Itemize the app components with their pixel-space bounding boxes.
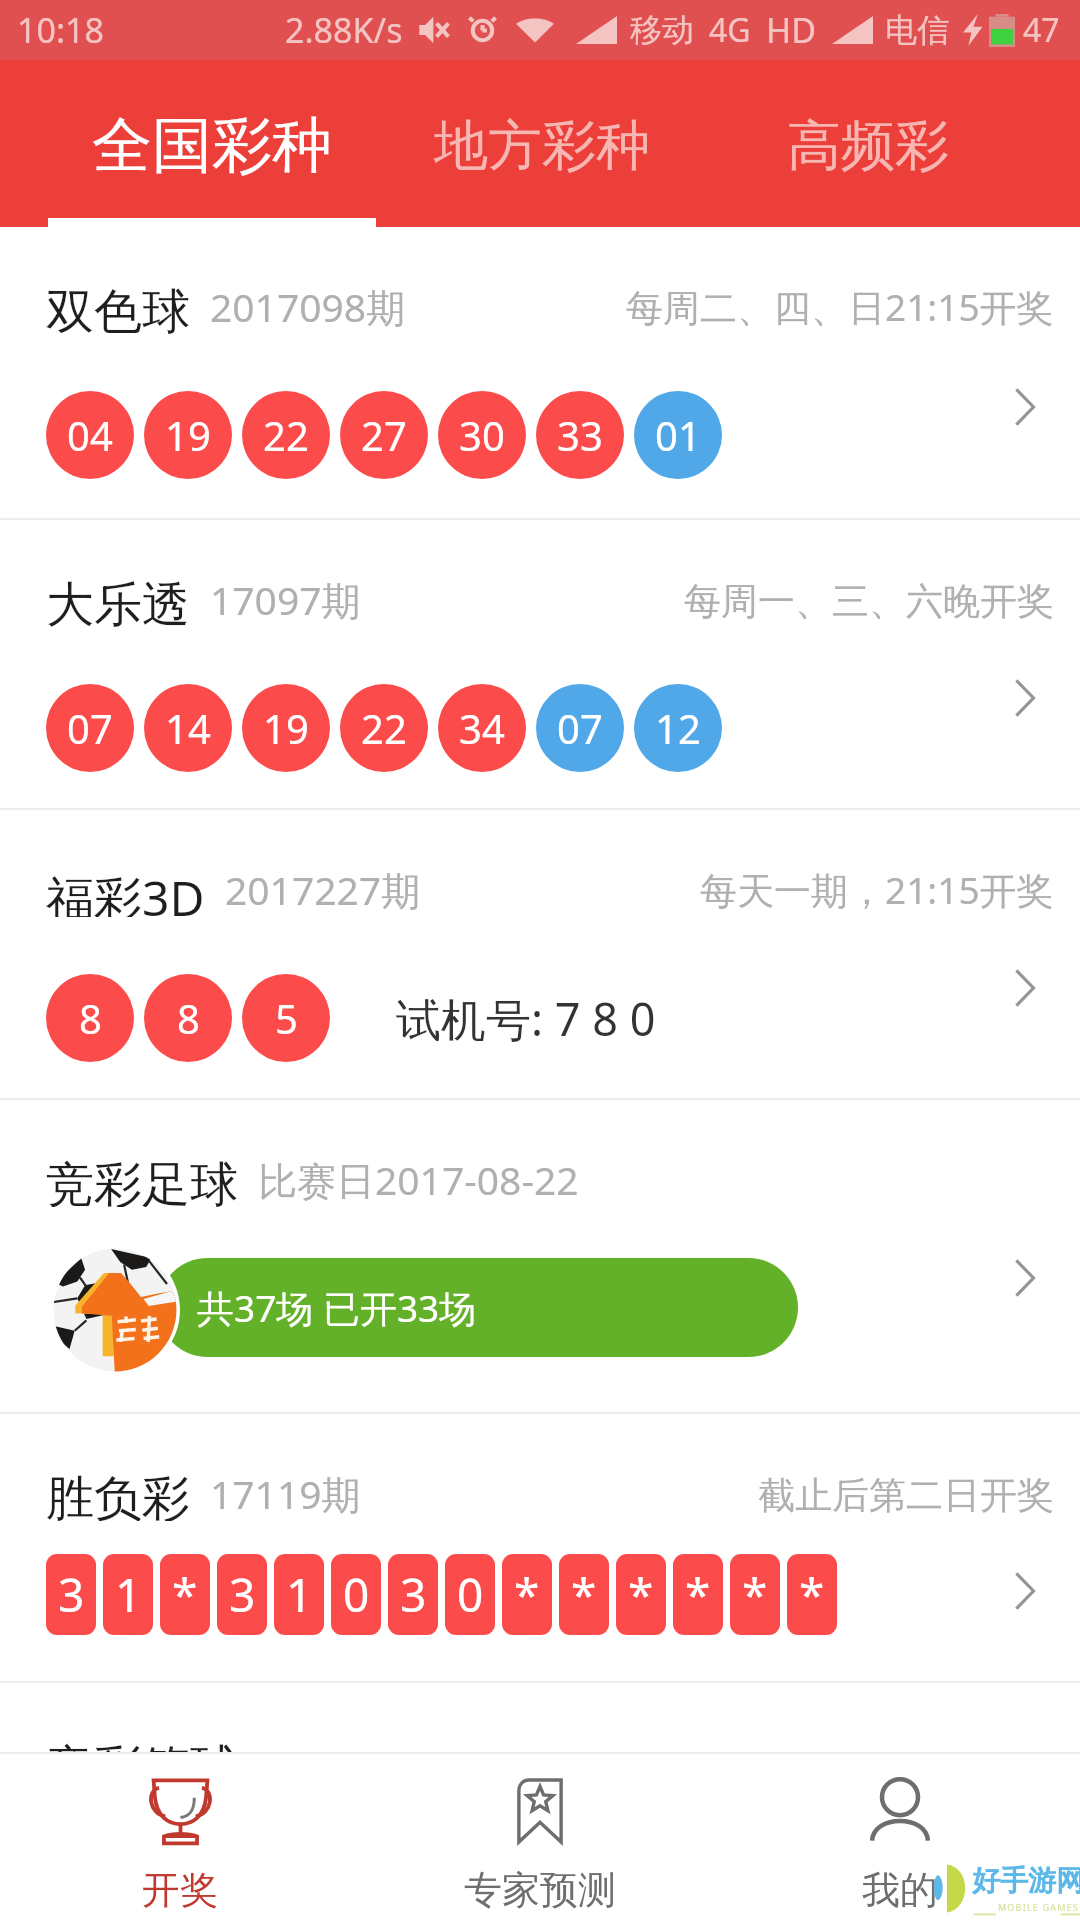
staticText: 每周一、三、六晚开奖 xyxy=(684,578,1054,625)
button[interactable]: 全国彩种 xyxy=(0,60,360,227)
staticText: 34 xyxy=(459,701,505,755)
staticText: 19 xyxy=(165,408,211,462)
staticText: 19 xyxy=(263,701,309,755)
staticText: HD xyxy=(766,7,817,53)
button[interactable]: Profile xyxy=(720,1754,1080,1920)
staticText: 专家预测 xyxy=(464,1866,616,1914)
staticText: 截止后第二日开奖 xyxy=(758,1472,1054,1519)
staticText: 3 xyxy=(229,1563,256,1626)
staticText: 01 xyxy=(655,408,701,462)
button[interactable]: 地方彩种 xyxy=(360,60,720,227)
staticText: 移动 xyxy=(630,10,694,50)
staticText: * xyxy=(514,1563,540,1626)
staticText: 3 xyxy=(58,1563,85,1626)
staticText: 47 xyxy=(1023,8,1060,52)
staticText: 胜负彩 xyxy=(46,1469,190,1521)
staticText: * xyxy=(628,1563,654,1626)
other: Results xyxy=(146,1778,215,1844)
staticText: 共37场 已开33场 xyxy=(197,1282,477,1333)
staticText: 33 xyxy=(557,408,603,462)
staticText: 8 xyxy=(177,991,200,1045)
staticText: 14 xyxy=(165,701,211,755)
staticText: 好手游网 xyxy=(972,1863,1080,1898)
staticText: 竞彩篮球 xyxy=(46,1738,238,1790)
staticText: 17119期 xyxy=(210,1467,361,1519)
staticText: * xyxy=(742,1563,768,1626)
staticText: * xyxy=(571,1563,597,1626)
staticText: 12 xyxy=(655,701,701,755)
button[interactable]: Expert predictions xyxy=(360,1754,720,1920)
staticText: 22 xyxy=(263,408,309,462)
staticText: * xyxy=(799,1563,825,1626)
staticText: 22 xyxy=(361,701,407,755)
staticText: 每周二、四、日21:15开奖 xyxy=(626,281,1054,332)
staticText: 高频彩 xyxy=(787,112,949,180)
staticText: 07 xyxy=(67,701,113,755)
staticText: 8 xyxy=(79,991,102,1045)
staticText: 电信 xyxy=(885,10,949,50)
button[interactable]: 福彩3D xyxy=(0,810,1080,1098)
staticText: 17097期 xyxy=(210,573,361,625)
button[interactable]: 胜负彩 xyxy=(0,1414,1080,1681)
button[interactable]: 双色球 xyxy=(0,227,1080,518)
staticText: 04 xyxy=(67,408,113,462)
staticText: 地方彩种 xyxy=(434,112,650,180)
button[interactable]: 竞彩足球 xyxy=(0,1100,1080,1412)
staticText: 我的 xyxy=(862,1866,938,1914)
staticText: 全国彩种 xyxy=(92,108,332,184)
button[interactable]: 高频彩 xyxy=(720,60,1080,227)
other: Profile xyxy=(870,1778,930,1844)
staticText: 福彩3D xyxy=(46,865,205,917)
staticText: MOBILE GAMES xyxy=(998,1901,1079,1913)
staticText: 双色球 xyxy=(46,282,190,334)
staticText: 开奖 xyxy=(142,1866,218,1914)
staticText: 10:18 xyxy=(17,7,104,53)
staticText: 07 xyxy=(557,701,603,755)
staticText: 2.88K/s xyxy=(285,7,403,53)
staticText: 比赛日2017-08-22 xyxy=(258,1153,579,1205)
staticText: 2017227期 xyxy=(225,863,421,915)
staticText: * xyxy=(172,1563,198,1626)
other: Expert predictions xyxy=(516,1778,564,1844)
button[interactable]: Results xyxy=(0,1754,360,1920)
staticText: 4G xyxy=(709,8,751,52)
staticText: 每天一期，21:15开奖 xyxy=(700,864,1054,915)
staticText: 0 xyxy=(343,1563,370,1626)
staticText: * xyxy=(685,1563,711,1626)
staticText: 2017098期 xyxy=(210,280,406,332)
staticText: 30 xyxy=(459,408,505,462)
staticText: 竞彩足球 xyxy=(46,1155,238,1207)
staticText: 1 xyxy=(286,1563,313,1626)
button[interactable]: 大乐透 xyxy=(0,520,1080,808)
staticText: 27 xyxy=(361,408,407,462)
staticText: 5 xyxy=(275,991,298,1045)
staticText: 3 xyxy=(400,1563,427,1626)
staticText: 大乐透 xyxy=(46,575,190,627)
staticText: 0 xyxy=(457,1563,484,1626)
staticText: 1 xyxy=(115,1563,142,1626)
staticText: 试机号: 7 8 0 xyxy=(396,988,656,1049)
